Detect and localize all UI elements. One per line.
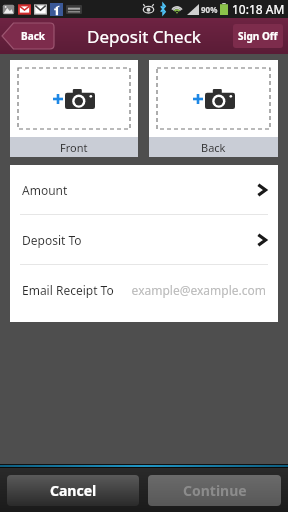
staticText: 90% [201,4,218,15]
staticText: Front [60,140,88,155]
button[interactable]: Capture Front of check [10,60,138,157]
staticText: 10:18 AM [232,1,285,17]
staticText: Email Receipt To [22,282,114,298]
staticText: example@example.com [131,282,266,298]
button[interactable]: Amount [10,165,278,214]
staticText: Back [21,29,45,43]
staticText: Amount [22,182,68,198]
button[interactable]: Back [2,23,54,49]
staticText: Deposit To [22,232,82,248]
staticText: Sign Off [238,29,278,43]
staticText: Deposit Check [87,25,201,48]
button[interactable]: Deposit To [10,215,278,264]
button[interactable]: Capture Back of check [149,60,278,157]
staticText: Continue [183,481,247,500]
button[interactable]: Email Receipt To [10,265,278,314]
button[interactable]: Cancel [7,475,139,506]
button[interactable]: Sign Off [233,24,283,48]
staticText: Cancel [50,481,97,500]
staticText: Back [201,140,226,155]
button[interactable]: Continue [148,475,281,506]
